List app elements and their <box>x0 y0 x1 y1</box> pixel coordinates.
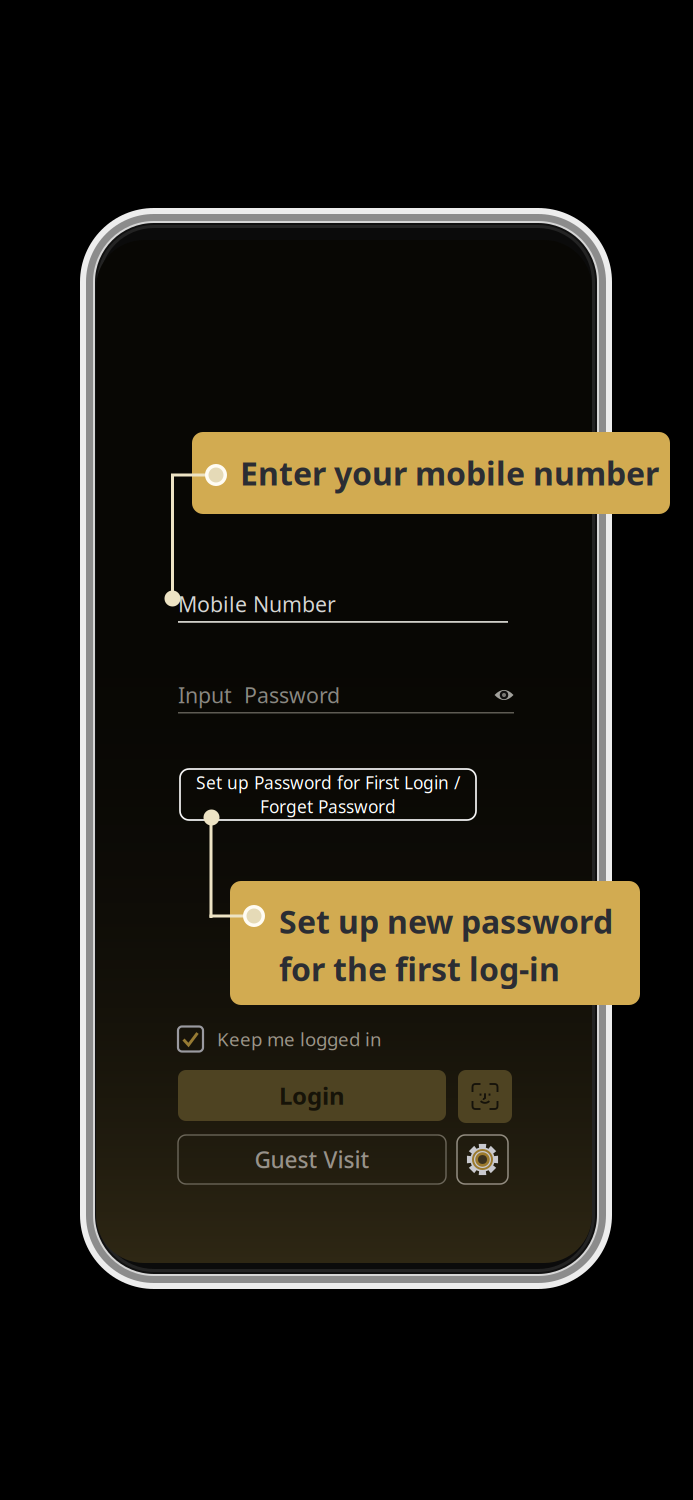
button[interactable]: Guest Visit <box>178 1135 446 1184</box>
staticText: Forget Password <box>260 795 396 818</box>
button[interactable]: Login <box>178 1070 446 1121</box>
button[interactable]: Sign in with Face ID <box>458 1070 512 1123</box>
staticText: Mobile Number <box>178 590 336 618</box>
staticText: Keep me logged in <box>217 1027 382 1051</box>
staticText: Guest Visit <box>254 1144 369 1174</box>
staticText: Set up Password for First Login / <box>196 771 460 794</box>
button[interactable]: Keep me logged in <box>178 1026 438 1052</box>
staticText: Input Password <box>178 681 340 709</box>
staticText: Set up new password <box>279 900 613 942</box>
staticText: Login <box>279 1080 345 1111</box>
button[interactable]: Settings <box>457 1135 508 1184</box>
button[interactable]: Set up Password for First Login / <box>180 769 476 820</box>
button[interactable]: Show password <box>494 688 514 702</box>
staticText: Enter your mobile number <box>240 452 659 494</box>
staticText: for the first log-in <box>279 947 560 990</box>
